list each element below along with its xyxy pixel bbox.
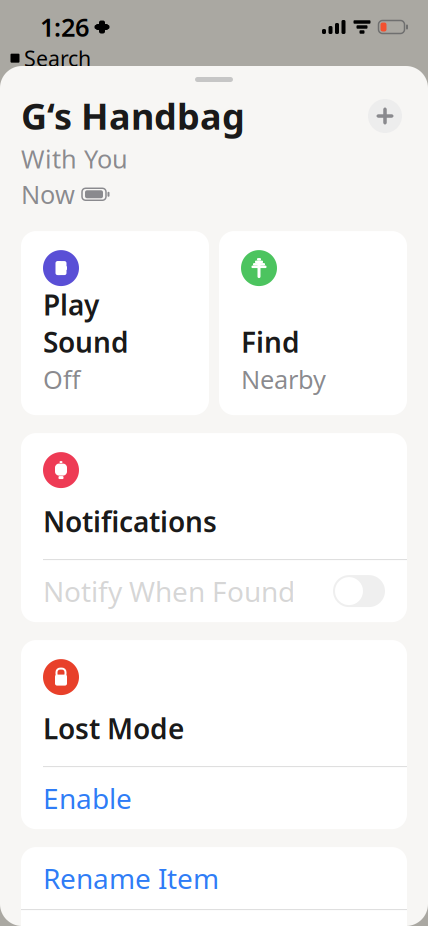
staticText: Find	[241, 323, 300, 360]
staticText: Lost Mode	[43, 710, 184, 747]
button[interactable]: Enable	[21, 767, 407, 829]
staticText: Notify When Found	[43, 572, 295, 610]
staticText: Nearby	[241, 362, 326, 396]
staticText: Search	[24, 44, 91, 72]
staticText: Rename Item	[43, 859, 219, 897]
staticText: Enable	[43, 779, 132, 817]
staticText: G‘s Handbag	[21, 92, 245, 140]
button[interactable]: Rename Item	[21, 847, 407, 909]
staticText: With You	[21, 142, 128, 175]
staticText: Notifications	[43, 503, 217, 540]
staticText: Play Sound	[43, 286, 129, 360]
staticText: Off	[43, 362, 80, 396]
button[interactable]: Close	[363, 94, 407, 138]
staticText: Now	[21, 177, 75, 211]
staticText: 1:26	[40, 10, 89, 44]
button[interactable]: Notify When Found	[21, 560, 407, 622]
button[interactable]: Back to Search	[0, 40, 91, 72]
button[interactable]: Play Sound	[21, 231, 209, 415]
button[interactable]: Find	[219, 231, 407, 415]
